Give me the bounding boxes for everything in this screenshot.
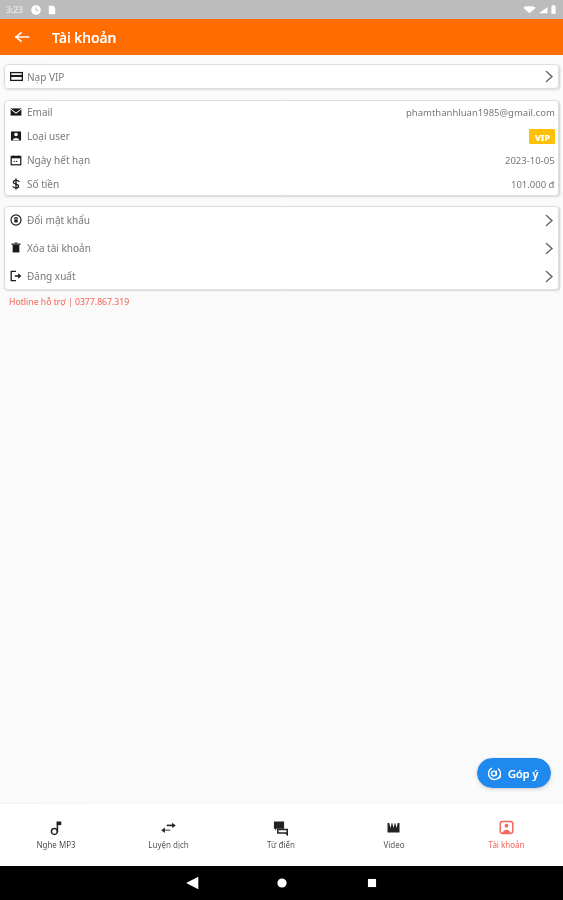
staticText: 101.000 đ <box>511 178 555 191</box>
staticText: Đăng xuất <box>27 269 76 283</box>
staticText: VIP <box>535 131 550 143</box>
button[interactable]: Góp ý <box>477 758 551 788</box>
button[interactable]: Đổi mật khẩu <box>4 206 559 234</box>
staticText: Số tiền <box>27 177 60 191</box>
staticText: Luyện dịch <box>148 839 189 850</box>
button[interactable]: Video <box>337 814 450 856</box>
button[interactable]: Back <box>12 27 32 47</box>
staticText: Tài khoản <box>52 28 117 47</box>
staticText: Nạp VIP <box>27 70 65 84</box>
button[interactable]: Tài khoản <box>450 814 563 856</box>
staticText: Góp ý <box>508 766 539 781</box>
button[interactable]: Recents <box>327 876 417 890</box>
button[interactable]: Từ điển <box>224 814 337 856</box>
button[interactable]: Luyện dịch <box>112 814 224 856</box>
staticText: Hotline hỗ trợ | 0377.867.319 <box>9 296 130 308</box>
staticText: Từ điển <box>267 839 295 850</box>
staticText: Xóa tài khoản <box>27 241 91 255</box>
button[interactable]: Đăng xuất <box>4 262 559 290</box>
staticText: Đổi mật khẩu <box>27 213 91 227</box>
button[interactable]: Back <box>147 876 237 890</box>
button[interactable]: Home <box>237 876 327 890</box>
staticText: 3:23 <box>6 4 23 16</box>
staticText: Nghe MP3 <box>36 839 76 850</box>
staticText: Tài khoản <box>488 839 525 850</box>
button[interactable]: Nạp VIP <box>4 64 559 89</box>
staticText: Video <box>383 839 405 850</box>
button[interactable]: Nghe MP3 <box>0 814 112 856</box>
staticText: Loại user <box>27 129 70 143</box>
staticText: Email <box>27 105 53 119</box>
staticText: 2023-10-05 <box>505 154 555 167</box>
button[interactable]: Xóa tài khoản <box>4 234 559 262</box>
staticText: phamthanhluan1985@gmail.com <box>406 106 555 119</box>
staticText: Ngày hết hạn <box>27 153 91 167</box>
